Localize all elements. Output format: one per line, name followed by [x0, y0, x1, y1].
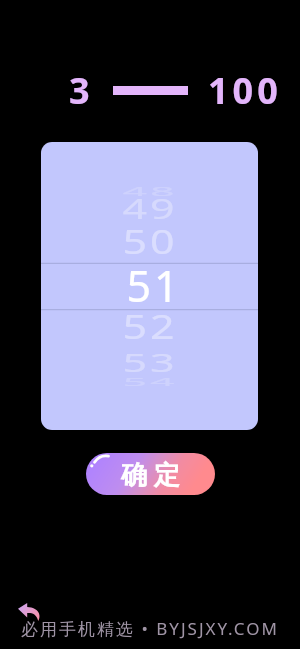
staticText: 100 — [208, 66, 282, 115]
staticText: 3 — [69, 66, 94, 115]
staticText: 必用手机精选 • BYJSJXY.COM — [21, 617, 279, 640]
staticText: 48 — [122, 182, 178, 197]
staticText: 52 — [122, 304, 178, 341]
button[interactable]: 48 — [41, 142, 258, 430]
staticText: 50 — [122, 219, 178, 256]
staticText: 54 — [122, 375, 178, 387]
staticText: 51 — [126, 256, 182, 306]
staticText: 确 定 — [121, 456, 180, 492]
staticText: 49 — [122, 190, 178, 221]
staticText: 53 — [122, 345, 178, 374]
other: Share — [18, 603, 41, 621]
button[interactable]: 确 定 — [86, 453, 215, 495]
